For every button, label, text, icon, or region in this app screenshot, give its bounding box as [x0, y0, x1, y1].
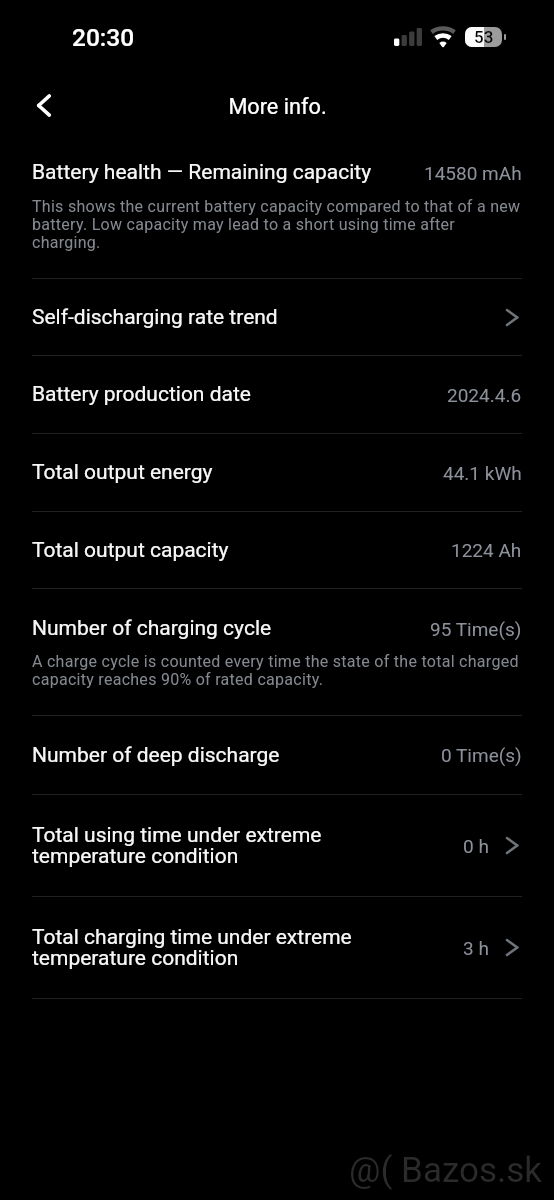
staticText: 95 Time(s) — [430, 618, 522, 640]
staticText: 20:30 — [72, 23, 135, 52]
staticText: Total using time under extreme temperatu… — [32, 823, 404, 869]
staticText: Total charging time under extreme temper… — [32, 925, 404, 971]
staticText: Self-discharging rate trend — [32, 305, 404, 330]
staticText: 44.1 kWh — [443, 462, 522, 484]
button[interactable]: Total using time under extreme temperatu… — [0, 795, 554, 897]
staticText: 3 h — [463, 937, 489, 959]
button[interactable]: Battery health — Remaining capacity — [0, 137, 554, 279]
button[interactable]: Total output capacity — [0, 512, 554, 589]
staticText: Battery health — Remaining capacity — [32, 160, 404, 185]
staticText: Total output energy — [32, 460, 404, 485]
staticText: 14580 mAh — [424, 162, 522, 184]
staticText: Number of deep discharge — [32, 743, 404, 768]
staticText: 1224 Ah — [451, 539, 522, 561]
button[interactable]: Back — [20, 82, 68, 130]
staticText: Total output capacity — [32, 538, 404, 563]
staticText: A charge cycle is counted every time the… — [32, 653, 522, 689]
staticText: 0 h — [463, 835, 489, 857]
staticText: Number of charging cycle — [32, 616, 404, 641]
button[interactable]: Number of charging cycle — [0, 589, 554, 716]
button[interactable]: Self-discharging rate trend — [0, 279, 554, 356]
staticText: Battery production date — [32, 382, 404, 407]
staticText: 2024.4.6 — [447, 384, 522, 406]
button[interactable]: Total charging time under extreme temper… — [0, 897, 554, 999]
button[interactable]: Battery production date — [0, 356, 554, 434]
button[interactable]: Number of deep discharge — [0, 716, 554, 795]
staticText: 53 — [474, 27, 494, 47]
staticText: This shows the current battery capacity … — [32, 198, 522, 252]
button[interactable]: Total output energy — [0, 434, 554, 512]
staticText: 0 Time(s) — [441, 744, 522, 766]
staticText: More info. — [228, 94, 327, 119]
